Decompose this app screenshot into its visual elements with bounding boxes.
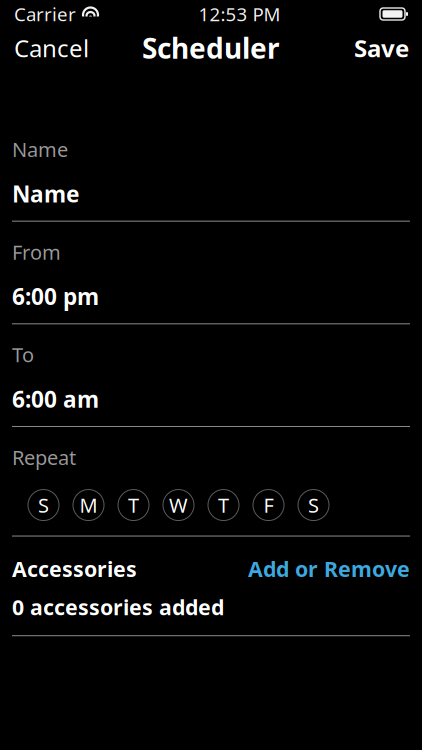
button[interactable]: S [28,489,59,520]
button[interactable]: Name [0,136,422,222]
staticText: T [128,492,139,518]
button[interactable]: M [73,489,104,520]
button[interactable]: Save [341,24,422,72]
staticText: Carrier [14,2,76,26]
staticText: Accessories [12,554,137,583]
button[interactable]: T [208,489,239,520]
button[interactable]: F [253,489,284,520]
staticText: To [12,341,34,368]
button[interactable]: S [298,489,329,520]
staticText: Add or Remove [248,554,410,583]
button[interactable]: Cancel [0,24,103,72]
staticText: Save [354,32,409,64]
staticText: From [12,239,61,265]
button[interactable]: Add or Remove [248,554,410,583]
staticText: Name [12,136,68,163]
button[interactable]: From [0,239,422,324]
staticText: Repeat [12,444,76,471]
staticText: M [79,492,97,518]
staticText: F [263,492,273,518]
staticText: Scheduler [142,29,280,67]
staticText: 0 accessories added [12,593,224,621]
staticText: S [38,492,49,518]
staticText: S [308,492,319,518]
staticText: 6:00 am [12,384,99,414]
staticText: Name [12,179,80,209]
staticText: 6:00 pm [12,281,99,311]
button[interactable]: W [163,489,194,520]
staticText: 12:53 PM [198,2,280,26]
staticText: Cancel [14,32,89,64]
staticText: T [218,492,229,518]
button[interactable]: To [0,341,422,427]
button[interactable]: T [118,489,149,520]
staticText: W [169,492,188,518]
